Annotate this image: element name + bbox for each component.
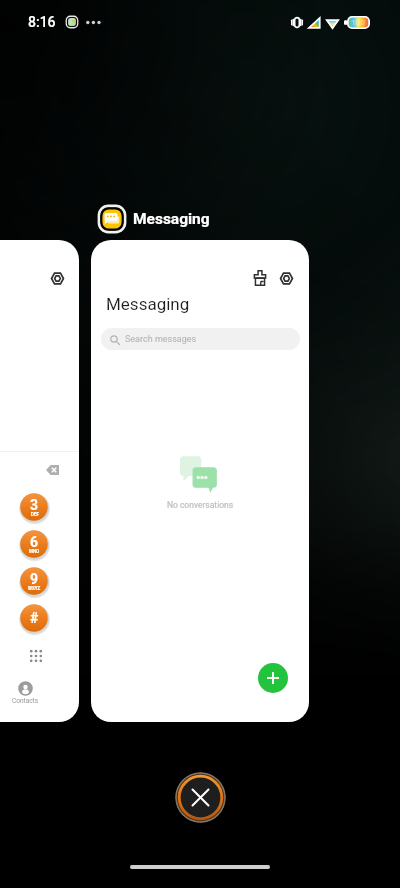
staticText: 8:16 — [28, 14, 56, 30]
staticText: 6 — [30, 534, 39, 550]
staticText: Contacts — [12, 697, 39, 705]
staticText: Messaging — [106, 294, 190, 314]
button[interactable]: Backspace — [42, 460, 62, 480]
button[interactable]: Keypad — [26, 646, 45, 665]
button[interactable]: Dialer settings — [46, 267, 68, 289]
staticText: MNO — [29, 549, 40, 554]
button[interactable]: 9 — [18, 565, 50, 597]
button[interactable]: New conversation — [258, 663, 288, 693]
button[interactable]: Contacts — [8, 682, 43, 705]
staticText: DEF — [31, 512, 39, 517]
staticText: No conversations — [156, 500, 244, 510]
button[interactable]: Clear all — [175, 772, 226, 823]
staticText: # — [30, 610, 39, 626]
staticText: Messaging — [133, 210, 210, 228]
staticText: 9 — [30, 571, 39, 587]
staticText: WXYZ — [28, 586, 41, 591]
button[interactable]: Settings — [275, 267, 297, 289]
button[interactable]: Dialer settings — [0, 240, 79, 722]
button[interactable]: # — [18, 602, 50, 634]
button[interactable]: 6 — [18, 528, 50, 560]
staticText: Search messages — [125, 334, 197, 345]
staticText: 3 — [30, 497, 39, 513]
button[interactable]: Clean up — [91, 240, 309, 722]
button[interactable]: 3 — [18, 491, 50, 523]
button[interactable]: Search messages — [101, 328, 300, 350]
button[interactable]: Clean up — [249, 267, 271, 289]
staticText: 100 — [351, 18, 365, 27]
